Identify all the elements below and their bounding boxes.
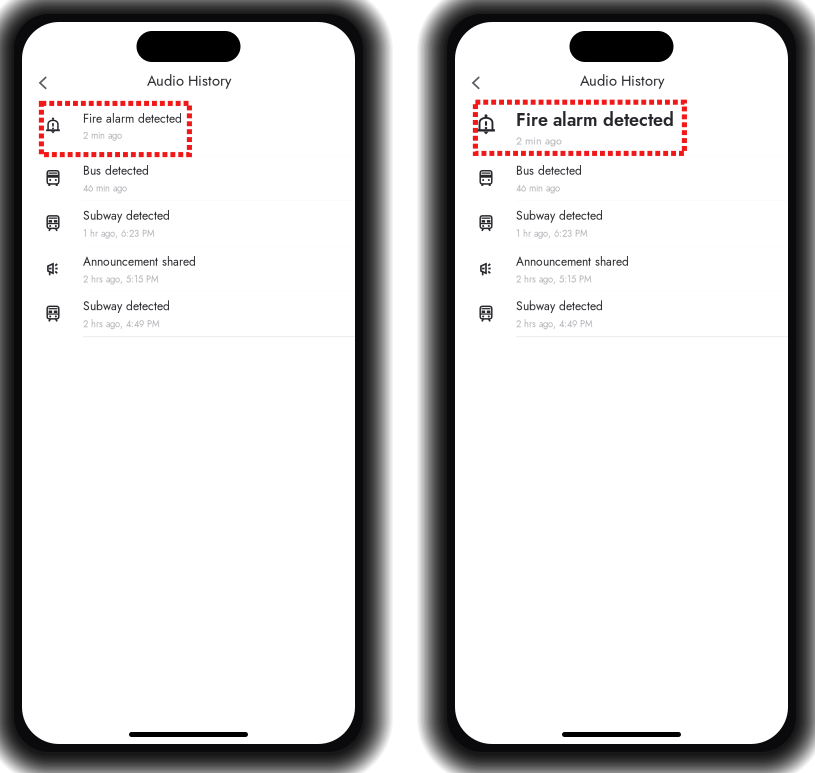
button[interactable]: Fire alarm detected: [455, 103, 788, 155]
button[interactable]: Bus detected: [22, 155, 355, 200]
staticText: Subway detected: [516, 207, 603, 224]
button[interactable]: Subway detected: [455, 200, 788, 246]
staticText: Audio History: [147, 70, 231, 91]
staticText: 2 min ago: [83, 129, 122, 142]
staticText: Fire alarm detected: [83, 110, 182, 127]
button[interactable]: Bus detected: [455, 155, 788, 200]
button[interactable]: Back: [463, 68, 493, 98]
staticText: 2 min ago: [516, 133, 562, 148]
staticText: Subway detected: [516, 297, 603, 315]
staticText: 2 hrs ago, 4:49 PM: [516, 317, 593, 331]
button[interactable]: Back: [30, 68, 60, 98]
button[interactable]: Announcement shared: [455, 246, 788, 291]
staticText: 2 hrs ago, 4:49 PM: [83, 317, 160, 331]
button[interactable]: Announcement shared: [22, 246, 355, 291]
button[interactable]: Subway detected: [455, 291, 788, 336]
staticText: 1 hr ago, 6:23 PM: [516, 227, 588, 240]
staticText: 2 hrs ago, 5:15 PM: [516, 273, 592, 286]
staticText: Audio History: [580, 70, 664, 91]
staticText: Bus detected: [516, 162, 582, 179]
button[interactable]: Subway detected: [22, 200, 355, 246]
staticText: 2 hrs ago, 5:15 PM: [83, 273, 159, 286]
button[interactable]: Fire alarm detected: [22, 103, 355, 155]
staticText: Subway detected: [83, 207, 170, 224]
staticText: Announcement shared: [83, 253, 196, 270]
staticText: 1 hr ago, 6:23 PM: [83, 227, 155, 240]
staticText: 46 min ago: [516, 182, 560, 195]
staticText: Announcement shared: [516, 253, 629, 270]
staticText: 46 min ago: [83, 182, 127, 195]
staticText: Bus detected: [83, 162, 149, 179]
staticText: Fire alarm detected: [516, 107, 674, 133]
button[interactable]: Subway detected: [22, 291, 355, 336]
staticText: Subway detected: [83, 297, 170, 315]
